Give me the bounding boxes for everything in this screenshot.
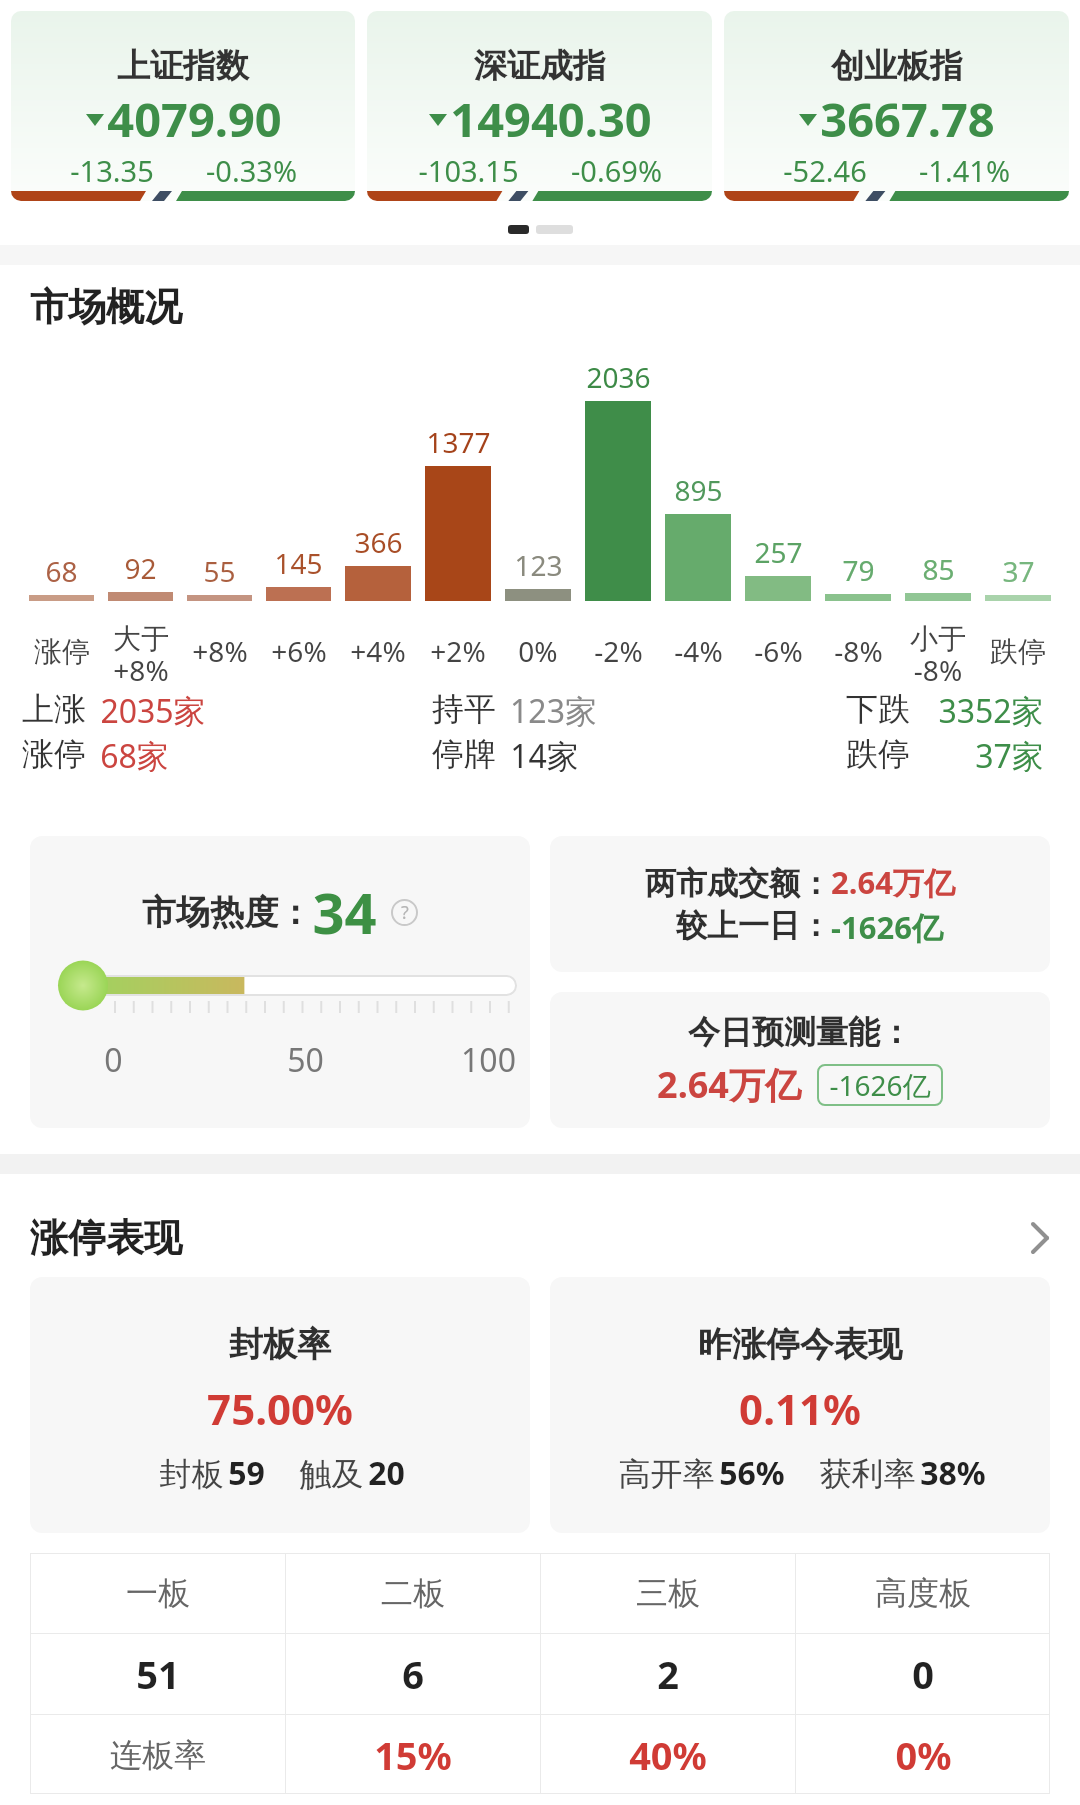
staticText: 跌停 — [846, 734, 910, 772]
staticText: 二板 — [381, 1573, 445, 1613]
staticText: 昨涨停今表现 — [698, 1323, 902, 1366]
staticText: 高度板 — [875, 1573, 971, 1613]
staticText: 较上一日： — [676, 906, 831, 945]
staticText: 0.11% — [739, 1380, 861, 1437]
staticText: 68 — [45, 552, 78, 590]
staticText: 两市成交额： — [645, 864, 831, 903]
staticText: 75.00% — [207, 1380, 353, 1437]
staticText: 3352家 — [938, 689, 1044, 727]
button[interactable]: 二板 — [286, 1553, 540, 1633]
button[interactable]: 两市成交额： — [550, 836, 1050, 972]
staticText: 2035家 — [100, 689, 206, 727]
button[interactable]: 一板 — [30, 1553, 285, 1633]
staticText: 封板 — [155, 1451, 228, 1495]
staticText: 895 — [674, 471, 723, 509]
staticText: -1.41% — [919, 151, 1010, 190]
staticText: -1626亿 — [831, 906, 943, 948]
staticText: -13.35 — [70, 151, 154, 190]
staticText: +4% — [350, 632, 406, 670]
button[interactable]: 今日预测量能： — [550, 992, 1050, 1128]
staticText: 59 — [228, 1451, 265, 1495]
staticText: 上涨 — [22, 689, 86, 727]
staticText: 大于 +8% — [113, 621, 169, 681]
button[interactable]: 三板 — [541, 1553, 795, 1633]
staticText: +8% — [192, 632, 248, 670]
staticText: 2 — [657, 1648, 679, 1700]
button[interactable]: 创业板指 — [724, 11, 1069, 201]
staticText: 68家 — [100, 734, 169, 772]
staticText: 56% — [719, 1451, 785, 1495]
button[interactable]: 昨涨停今表现 — [550, 1277, 1050, 1533]
staticText: 14家 — [510, 734, 579, 772]
staticText: -103.15 — [418, 151, 519, 190]
staticText: 今日预测量能： — [688, 1012, 912, 1052]
staticText: 4079.90 — [107, 87, 282, 151]
button[interactable]: 涨停表现 — [30, 1214, 1050, 1262]
staticText: 一板 — [126, 1573, 190, 1613]
staticText: 51 — [136, 1648, 180, 1700]
staticText: 小于 -8% — [910, 621, 966, 681]
staticText: 123 — [514, 546, 563, 584]
staticText: 20 — [368, 1451, 405, 1495]
staticText: 市场概况 — [30, 283, 182, 331]
staticText: 触及 — [295, 1451, 368, 1495]
staticText: -6% — [754, 632, 803, 670]
staticText: 涨停 — [34, 634, 90, 669]
staticText: 三板 — [636, 1573, 700, 1613]
staticText: -2% — [594, 632, 643, 670]
staticText: 40% — [629, 1729, 707, 1781]
staticText: 深证成指 — [474, 45, 606, 87]
staticText: 2036 — [586, 358, 651, 396]
staticText: 持平 — [432, 689, 496, 727]
staticText: 市场热度： — [142, 891, 312, 934]
staticText: 50 — [287, 1038, 324, 1082]
staticText: 123家 — [510, 689, 597, 727]
staticText: ? — [401, 900, 409, 925]
staticText: -0.33% — [206, 151, 297, 190]
staticText: 0% — [895, 1729, 952, 1781]
staticText: -0.69% — [571, 151, 662, 190]
staticText: 涨停表现 — [30, 1214, 182, 1262]
staticText: 79 — [842, 551, 875, 589]
button[interactable]: 封板率 — [30, 1277, 530, 1533]
staticText: +6% — [271, 632, 327, 670]
staticText: 145 — [274, 544, 323, 582]
staticText: 3667.78 — [820, 87, 995, 151]
staticText: 257 — [754, 533, 803, 571]
staticText: 37家 — [975, 734, 1044, 772]
staticText: 2.64万亿 — [657, 1060, 801, 1109]
staticText: 获利率 — [815, 1451, 920, 1495]
staticText: 涨停 — [22, 734, 86, 772]
staticText: -52.46 — [783, 151, 867, 190]
staticText: 下跌 — [846, 689, 910, 727]
button[interactable]: 市场热度： — [30, 836, 530, 1128]
staticText: 100 — [461, 1038, 516, 1082]
staticText: 34 — [312, 874, 377, 950]
staticText: 2.64万亿 — [831, 861, 955, 903]
staticText: 连板率 — [110, 1735, 206, 1775]
button[interactable]: 上证指数 — [11, 11, 355, 201]
staticText: 14940.30 — [450, 87, 652, 151]
staticText: 92 — [124, 549, 157, 587]
staticText: 封板率 — [229, 1323, 331, 1366]
staticText: 创业板指 — [831, 45, 963, 87]
staticText: 0 — [912, 1648, 934, 1700]
button[interactable]: 深证成指 — [367, 11, 712, 201]
staticText: 366 — [354, 523, 403, 561]
staticText: -4% — [674, 632, 723, 670]
staticText: 上证指数 — [117, 45, 249, 87]
staticText: -8% — [834, 632, 883, 670]
staticText: 15% — [374, 1729, 452, 1781]
staticText: 跌停 — [990, 634, 1046, 669]
staticText: 1377 — [426, 423, 491, 461]
staticText: -1626亿 — [829, 1066, 931, 1104]
staticText: 停牌 — [432, 734, 496, 772]
staticText: 高开率 — [614, 1451, 719, 1495]
staticText: 38% — [920, 1451, 986, 1495]
staticText: 55 — [203, 552, 236, 590]
staticText: 85 — [922, 550, 955, 588]
staticText: 37 — [1002, 552, 1035, 590]
button[interactable]: 高度板 — [796, 1553, 1050, 1633]
staticText: 0 — [104, 1038, 123, 1082]
staticText: +2% — [430, 632, 486, 670]
